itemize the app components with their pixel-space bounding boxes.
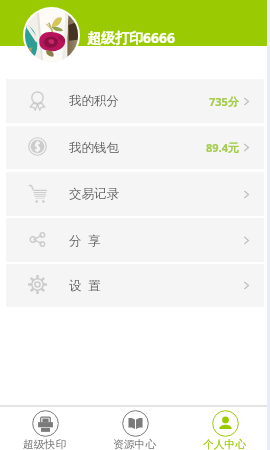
button[interactable]: 个人中心 — [180, 407, 270, 450]
staticText: 我的积分 — [69, 93, 119, 109]
staticText: 我的钱包 — [69, 140, 119, 156]
staticText: 设 置 — [69, 277, 101, 294]
staticText: 超级快印 — [23, 438, 67, 450]
button[interactable]: 设 置 — [6, 264, 264, 307]
button[interactable]: 资源中心 — [90, 407, 180, 450]
staticText: 交易记录 — [69, 186, 119, 202]
button[interactable]: 我的积分 — [6, 79, 264, 123]
staticText: 89.4元 — [206, 140, 239, 155]
staticText: 资源中心 — [113, 438, 157, 450]
staticText: 分 享 — [69, 232, 101, 249]
staticText: 735分 — [209, 94, 239, 109]
staticText: 超级打印6666 — [87, 28, 176, 47]
button[interactable]: 我的钱包 — [6, 126, 264, 169]
button[interactable]: Profile avatar — [25, 9, 78, 62]
button[interactable]: 交易记录 — [6, 172, 264, 216]
staticText: 个人中心 — [203, 438, 247, 450]
button[interactable]: 超级快印 — [0, 407, 90, 450]
button[interactable]: 分 享 — [6, 218, 264, 262]
